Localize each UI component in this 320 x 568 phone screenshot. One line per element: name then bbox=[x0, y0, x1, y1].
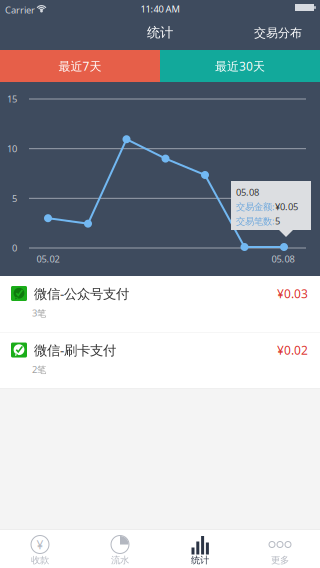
staticText: 10 bbox=[7, 142, 17, 155]
button[interactable]: 微信-公众号支付 bbox=[0, 276, 320, 332]
staticText: 流水 bbox=[111, 554, 129, 566]
button[interactable]: 流水 bbox=[80, 529, 160, 568]
staticText: 05.08 bbox=[271, 253, 294, 265]
staticText: 交易分布 bbox=[254, 26, 302, 40]
staticText: 统计 bbox=[147, 24, 173, 41]
staticText: 更多 bbox=[271, 554, 289, 566]
staticText: 15 bbox=[7, 93, 17, 105]
staticText: 最近7天 bbox=[58, 58, 101, 74]
button[interactable]: ¥ bbox=[0, 529, 80, 568]
staticText: 2笔 bbox=[32, 363, 46, 376]
staticText: ¥0.05 bbox=[275, 200, 298, 213]
button[interactable]: 交易分布 bbox=[244, 25, 312, 41]
button[interactable]: 微信-刷卡支付 bbox=[0, 332, 320, 388]
staticText: ¥0.02 bbox=[277, 342, 308, 358]
staticText: 收款 bbox=[31, 554, 49, 566]
staticText: ¥0.03 bbox=[277, 285, 308, 301]
staticText: Carrier bbox=[5, 4, 35, 16]
staticText: 交易笔数: bbox=[236, 215, 275, 227]
staticText: 11:40 AM bbox=[140, 3, 179, 15]
staticText: 05.02 bbox=[36, 253, 59, 265]
button[interactable]: 更多 bbox=[240, 529, 320, 568]
staticText: 交易金额: bbox=[236, 200, 275, 213]
staticText: 统计 bbox=[191, 554, 209, 566]
staticText: ¥ bbox=[36, 536, 43, 552]
staticText: 0 bbox=[12, 242, 17, 254]
staticText: 3笔 bbox=[32, 307, 46, 319]
button[interactable]: 统计 bbox=[160, 529, 240, 568]
staticText: 5 bbox=[12, 192, 17, 204]
staticText: 最近30天 bbox=[215, 58, 265, 74]
staticText: 微信-刷卡支付 bbox=[34, 341, 116, 359]
staticText: 微信-公众号支付 bbox=[34, 285, 129, 302]
button[interactable]: 最近30天 bbox=[160, 50, 320, 82]
staticText: 05.08 bbox=[236, 186, 259, 198]
button[interactable]: 最近7天 bbox=[0, 50, 160, 82]
staticText: 5 bbox=[275, 215, 280, 227]
